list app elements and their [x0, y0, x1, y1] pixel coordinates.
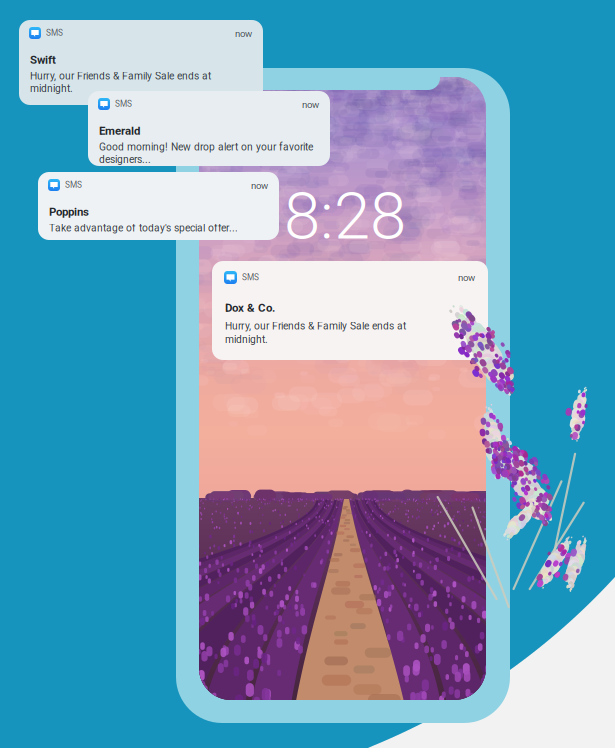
staticText: now	[302, 99, 319, 110]
staticText: SMS	[115, 99, 132, 109]
staticText: Take advantage of today's special offer.…	[49, 222, 238, 234]
staticText: midnight.	[225, 333, 268, 345]
staticText: Hurry, our Friends & Family Sale ends at	[225, 320, 406, 332]
button[interactable]: SMS	[19, 20, 263, 105]
staticText: now	[458, 272, 475, 283]
staticText: Dox & Co.	[225, 301, 275, 314]
button[interactable]: SMS	[212, 261, 488, 360]
staticText: 8:28	[284, 178, 406, 255]
staticText: now	[235, 28, 252, 39]
button[interactable]: SMS	[38, 172, 279, 240]
staticText: SMS	[65, 180, 82, 190]
staticText: Good morning! New drop alert on your fav…	[99, 141, 313, 153]
staticText: Emerald	[99, 124, 140, 137]
button[interactable]: SMS	[88, 91, 330, 166]
staticText: SMS	[242, 273, 259, 282]
staticText: designers...	[99, 153, 151, 165]
staticText: midnight.	[30, 82, 73, 94]
staticText: Poppins	[49, 205, 89, 218]
staticText: Swift	[30, 53, 56, 66]
staticText: SMS	[46, 28, 63, 38]
staticText: now	[251, 180, 268, 191]
staticText: Hurry, our Friends & Family Sale ends at	[30, 70, 211, 82]
